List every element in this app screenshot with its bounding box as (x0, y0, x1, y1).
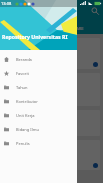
button[interactable]: Tahun (0, 80, 77, 94)
button[interactable]: Unit Kerja (0, 108, 77, 122)
button[interactable]: Dr. WIDODO N, M.Kom (3, 110, 50, 136)
staticText: Unit Kerja (16, 113, 35, 118)
staticText: Dr. WIDODO N, M.Kom (4, 131, 39, 135)
staticText: 13:08 (1, 1, 12, 6)
button[interactable]: Ir. Sunaryo (53, 110, 100, 136)
button[interactable]: Ir. Sunaryo (53, 140, 100, 170)
button[interactable]: TERBARU (0, 22, 51, 34)
button[interactable]: Bidang Ilmu (0, 122, 77, 136)
staticText: Informatika (55, 47, 73, 51)
staticText: Beranda (16, 57, 32, 62)
staticText: Favorit (16, 71, 29, 76)
button[interactable]: Download (93, 163, 98, 168)
button[interactable]: Ir. Sunaryo (3, 38, 50, 69)
button[interactable]: Ir. Sunaryo (3, 140, 50, 170)
staticText: Kontributor (16, 99, 38, 104)
button[interactable]: Penulis (0, 136, 77, 150)
staticText: Bidang Ilmu (16, 127, 39, 132)
staticText: Informatika (5, 47, 23, 51)
button[interactable]: Ir. Sunaryo (3, 73, 50, 106)
button[interactable]: Ir. Sunaryo (53, 73, 100, 106)
staticText: Ir. Sunaryo (5, 75, 23, 80)
button[interactable]: Kontributor (0, 94, 77, 108)
staticText: SHARE (71, 26, 84, 31)
staticText: Informatika (5, 82, 23, 86)
button[interactable]: Search (89, 5, 101, 17)
staticText: Tahun (16, 85, 28, 90)
button[interactable]: Beranda (0, 52, 77, 66)
staticText: Repository Universitas RI (2, 33, 68, 40)
button[interactable]: Favorit (0, 66, 77, 80)
staticText: Penulis (16, 141, 30, 146)
button[interactable]: SHARE (51, 22, 103, 34)
button[interactable]: Ir. Sunaryo (53, 38, 100, 69)
staticText: Ir. Sunaryo (5, 142, 23, 147)
staticText: Ir. Sunaryo (5, 40, 23, 45)
button[interactable]: Download (93, 62, 98, 67)
